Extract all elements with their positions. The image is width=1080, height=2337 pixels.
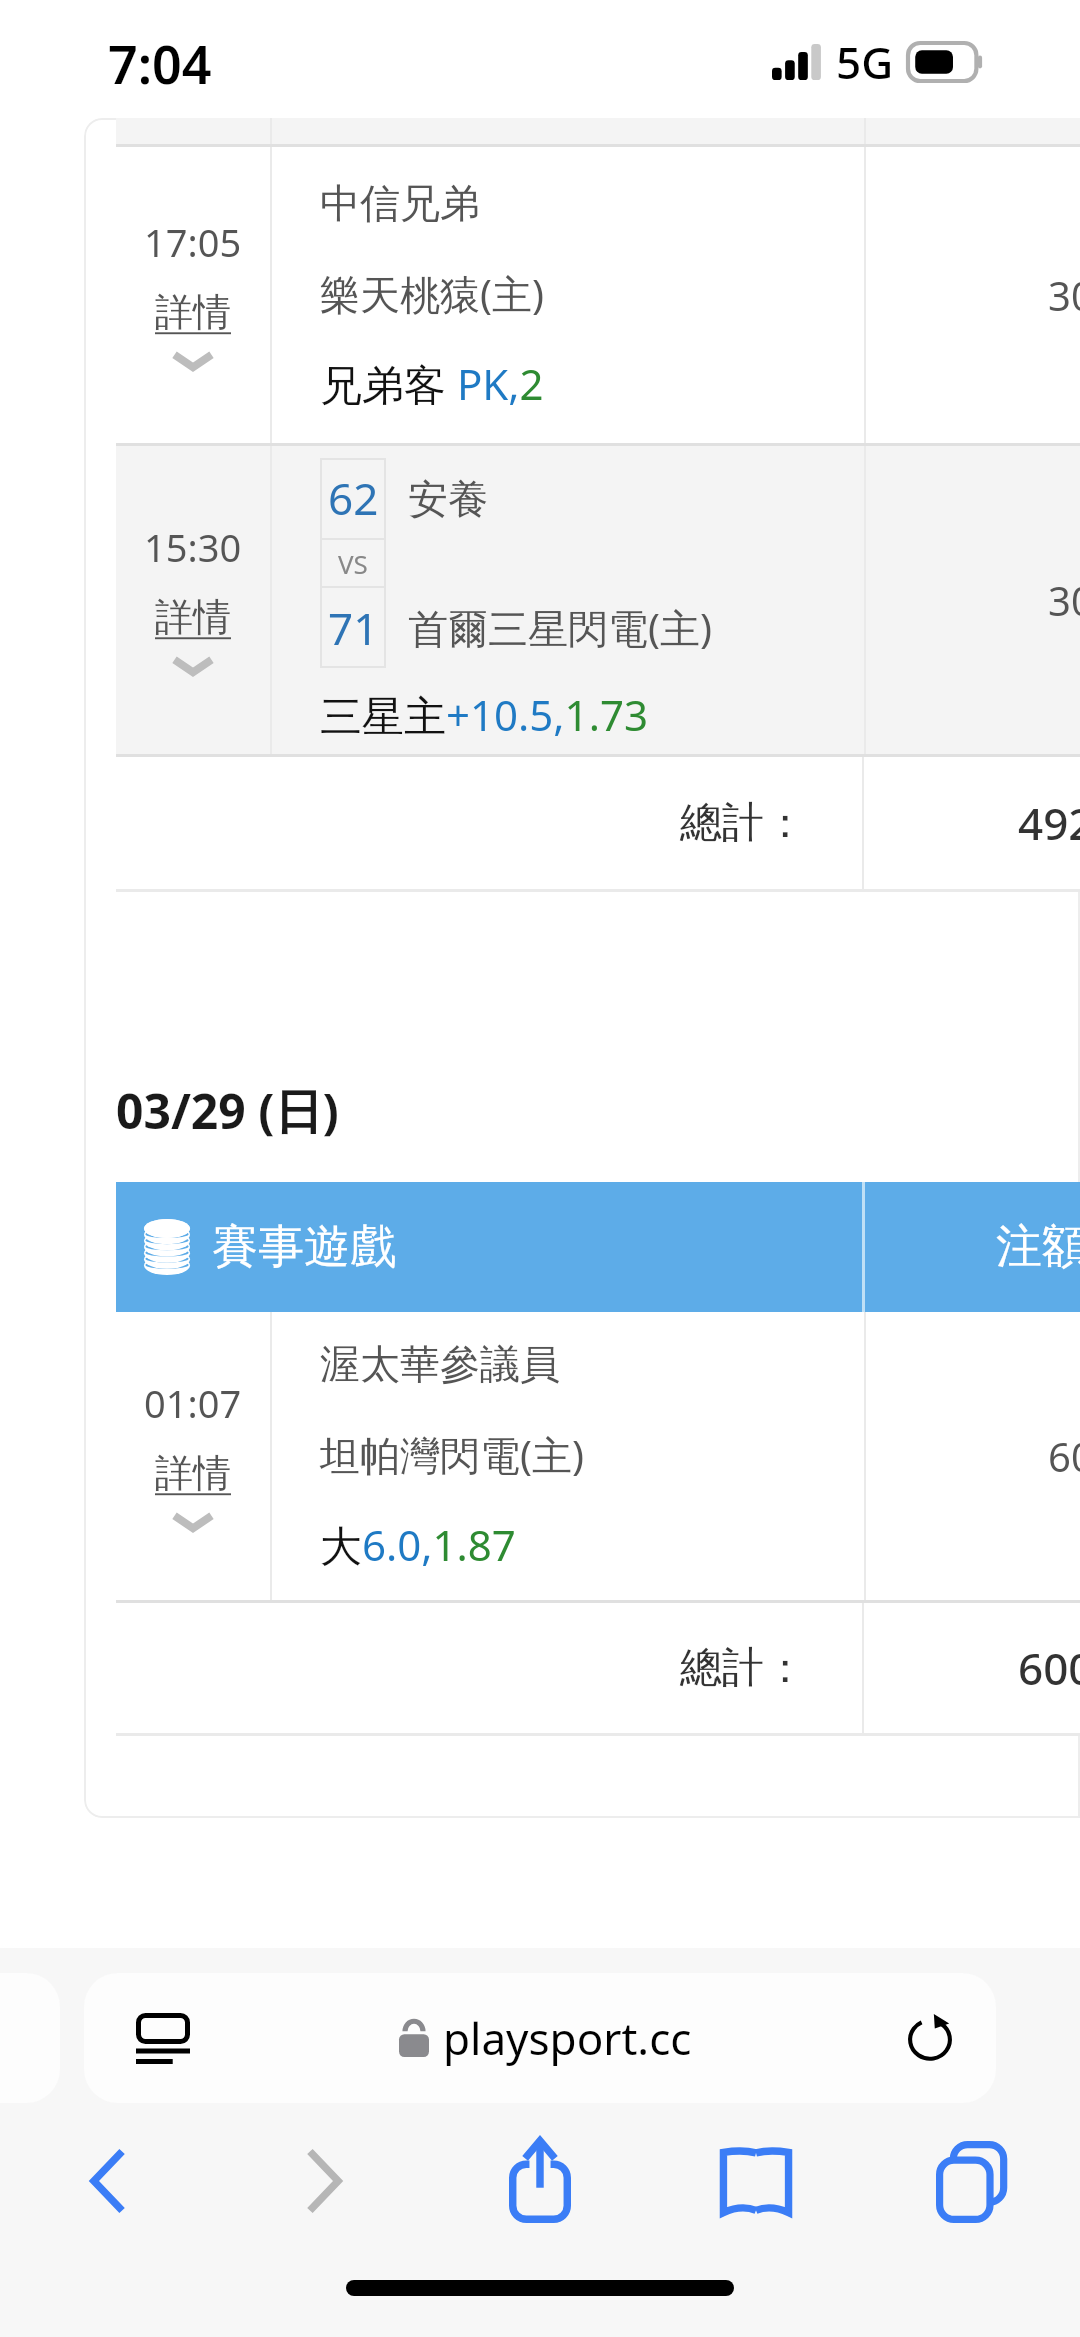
button[interactable]: Tabs (864, 2106, 1080, 2256)
button[interactable]: Page settings (128, 2003, 198, 2073)
staticText: VS (338, 546, 368, 581)
staticText: 安養 (408, 474, 488, 524)
staticText: 03/29 (日) (116, 1078, 339, 1144)
staticText: 兄弟客 PK,2 (320, 355, 544, 412)
staticText: 17:05 (144, 216, 242, 268)
staticText: 01:07 (144, 1377, 242, 1429)
staticText: 大6.0,1.87 (320, 1516, 516, 1573)
staticText: 首爾三星閃電(主) (408, 600, 712, 655)
staticText: 62 (328, 468, 379, 528)
staticText: 三星主+10.5,1.73 (320, 686, 648, 743)
button[interactable]: Share (432, 2106, 648, 2256)
staticText: 總計： (680, 1642, 806, 1695)
staticText: 中信兄弟 (320, 178, 480, 228)
staticText: 渥太華參議員 (320, 1339, 560, 1389)
staticText: 600 (1018, 1638, 1080, 1698)
staticText: playsport.cc (443, 2008, 692, 2068)
button[interactable]: 17:05 (116, 147, 1080, 443)
staticText: 詳情 (155, 593, 231, 641)
staticText: 71 (328, 598, 379, 658)
staticText: 總計： (680, 797, 806, 850)
button[interactable]: Back (0, 2106, 216, 2256)
staticText: 7:04 (108, 28, 212, 99)
staticText: 賽事遊戲 (212, 1218, 396, 1276)
staticText: 15:30 (144, 521, 242, 573)
staticText: 5G (836, 32, 894, 92)
button[interactable]: Page settings (84, 1973, 996, 2103)
staticText: 30 (1048, 573, 1080, 627)
staticText: 詳情 (155, 1449, 231, 1497)
button[interactable]: Bookmarks (648, 2106, 864, 2256)
staticText: 492 (1018, 793, 1080, 853)
staticText: 30 (1048, 268, 1080, 322)
button[interactable]: 01:07 (116, 1312, 1080, 1600)
staticText: 注額 (996, 1218, 1080, 1276)
staticText: 60 (1048, 1429, 1080, 1483)
staticText: 坦帕灣閃電(主) (320, 1427, 584, 1482)
staticText: 詳情 (155, 288, 231, 336)
button[interactable]: 15:30 (116, 446, 1080, 754)
button[interactable]: 賽事遊戲 (116, 1182, 862, 1312)
staticText: 樂天桃猿(主) (320, 266, 544, 321)
button[interactable]: Forward (216, 2106, 432, 2256)
button[interactable]: Reload (894, 2002, 966, 2074)
